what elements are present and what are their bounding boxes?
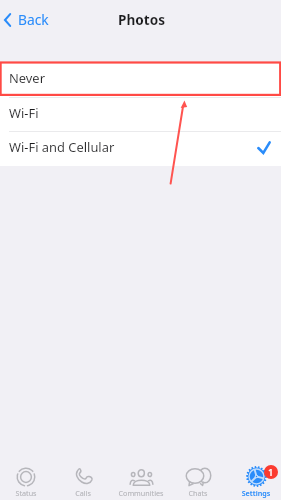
- button[interactable]: Calls: [55, 454, 111, 500]
- staticText: Calls: [55, 488, 111, 498]
- staticText: Chats: [170, 488, 226, 498]
- staticText: Status: [0, 488, 54, 498]
- staticText: Wi-Fi and Cellular: [9, 138, 115, 156]
- button[interactable]: Wi-Fi and Cellular: [0, 132, 281, 166]
- button[interactable]: Status: [0, 454, 54, 500]
- staticText: Communities: [113, 488, 169, 498]
- button[interactable]: 1: [228, 454, 281, 500]
- button[interactable]: Back: [0, 8, 57, 33]
- staticText: Back: [18, 10, 49, 29]
- staticText: Never: [9, 69, 45, 87]
- button[interactable]: Wi-Fi: [0, 98, 281, 131]
- staticText: Photos: [118, 10, 165, 29]
- staticText: Wi-Fi: [9, 104, 39, 122]
- staticText: Settings: [228, 488, 281, 498]
- staticText: 1: [268, 466, 274, 479]
- button[interactable]: Chats: [170, 454, 226, 500]
- button[interactable]: Communities: [113, 454, 169, 500]
- button[interactable]: Never: [0, 62, 281, 97]
